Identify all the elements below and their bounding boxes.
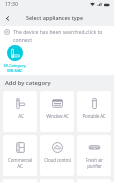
button[interactable]: AC <box>3 91 37 132</box>
staticText: AC <box>18 113 24 119</box>
button[interactable]: Fresh air purifier <box>77 135 111 176</box>
button[interactable]: Connect device <box>1 45 28 73</box>
staticText: Cloud control <box>44 157 71 163</box>
button[interactable]: Portable AC <box>77 91 111 132</box>
staticText: Portable AC <box>82 113 106 119</box>
button[interactable]: Cloud control <box>40 135 74 176</box>
button[interactable]: Window AC <box>40 91 74 132</box>
staticText: 17:30 <box>5 1 18 8</box>
button[interactable]: Back <box>0 11 14 25</box>
staticText: Add by category <box>5 79 51 87</box>
button[interactable]: Commercial AC <box>3 135 37 176</box>
staticText: Select appliances type <box>26 14 83 21</box>
staticText: SR-Category- MB-MAC <box>3 63 27 73</box>
staticText: The device has been searched,click to co… <box>13 29 111 43</box>
staticText: Commercial AC <box>8 157 32 169</box>
staticText: Window AC <box>46 113 69 119</box>
staticText: Fresh air purifier <box>86 157 103 169</box>
